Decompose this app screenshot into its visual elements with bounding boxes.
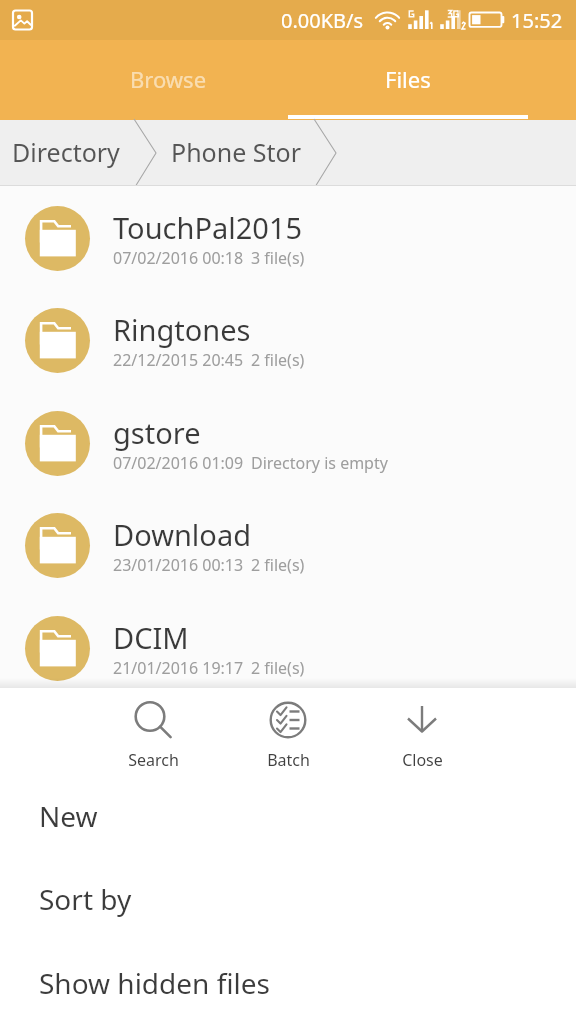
staticText: 22/12/2015 20:45 — [113, 349, 244, 371]
staticText: 23/01/2016 00:13 — [113, 554, 244, 576]
staticText: Search — [128, 749, 179, 771]
button[interactable]: Files — [288, 40, 528, 120]
staticText: 07/02/2016 01:09 — [113, 452, 244, 474]
button[interactable]: Download — [0, 493, 576, 595]
staticText: Download — [113, 515, 251, 554]
button[interactable]: Close — [366, 691, 478, 763]
button[interactable]: Search — [97, 691, 209, 763]
button[interactable]: Browse — [48, 40, 288, 120]
staticText: 0.00KB/s — [281, 7, 364, 34]
staticText: Phone Stor — [171, 135, 301, 169]
staticText: 2 file(s) — [251, 349, 305, 371]
staticText: Ringtones — [113, 310, 251, 349]
button[interactable]: gstore — [0, 391, 576, 493]
staticText: Show hidden files — [39, 964, 270, 1002]
staticText: 3 file(s) — [251, 247, 305, 269]
staticText: Close — [402, 749, 443, 771]
staticText: Batch — [267, 749, 310, 771]
staticText: Browse — [130, 64, 207, 94]
staticText: Files — [385, 64, 431, 94]
button[interactable]: Ringtones — [0, 288, 576, 390]
staticText: Directory is empty — [251, 452, 388, 474]
staticText: Sort by — [39, 880, 132, 918]
staticText: 21/01/2016 19:17 — [113, 657, 244, 679]
staticText: DCIM — [113, 618, 189, 657]
staticText: 2 file(s) — [251, 554, 305, 576]
staticText: 15:52 — [511, 7, 563, 34]
button[interactable]: TouchPal2015 — [0, 186, 576, 288]
staticText: 07/02/2016 00:18 — [113, 247, 244, 269]
button[interactable]: Batch — [232, 692, 344, 764]
staticText: gstore — [113, 413, 201, 452]
button[interactable]: Sort by — [0, 857, 576, 941]
staticText: New — [39, 797, 98, 835]
button[interactable]: DCIM — [0, 596, 576, 698]
button[interactable]: Show hidden files — [0, 941, 576, 1024]
staticText: Directory — [12, 135, 120, 169]
staticText: TouchPal2015 — [113, 208, 303, 247]
staticText: 2 file(s) — [251, 657, 305, 679]
button[interactable]: New — [0, 774, 576, 858]
